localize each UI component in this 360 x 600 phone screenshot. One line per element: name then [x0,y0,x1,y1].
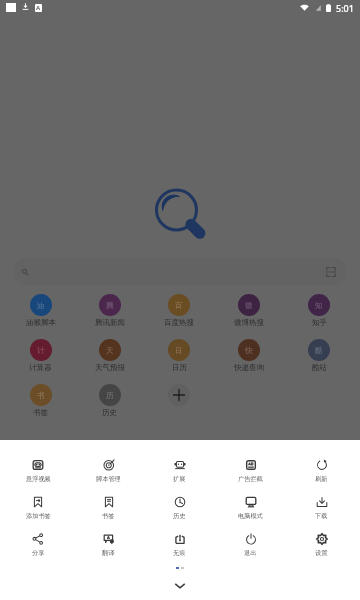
staticText: 知乎 [312,318,327,327]
staticText: 设置 [315,549,328,557]
staticText: 广告拦截 [238,475,263,483]
staticText: 历史 [173,512,186,520]
staticText: 书签 [33,408,48,417]
button[interactable]: 知 [284,293,354,338]
staticText: 日历 [172,363,187,372]
staticText: 刷新 [315,475,328,483]
staticText: 腾 [106,301,114,310]
button[interactable]: 计 [6,338,75,383]
button[interactable]: 脚本管理 [73,458,144,495]
button[interactable]: 酷 [284,338,354,383]
button[interactable]: 百 [144,293,214,338]
staticText: 无痕 [173,549,186,557]
staticText: 计算器 [29,363,52,372]
staticText: 5:01 [336,2,354,14]
button[interactable]: 油 [6,293,75,338]
staticText: 知 [315,301,323,310]
button[interactable]: 悬浮视频 [3,458,73,495]
button[interactable]: 电脑模式 [215,495,286,532]
staticText: 扩展 [173,475,186,483]
button[interactable]: 历 [75,383,144,428]
staticText: 翻译 [102,549,115,557]
staticText: 计 [37,346,45,355]
staticText: 百度热搜 [164,318,194,327]
button[interactable]: 书 [6,383,75,428]
staticText: 电脑模式 [238,512,263,520]
button[interactable]: 日 [144,338,214,383]
button[interactable]: 历史 [144,495,215,532]
staticText: 书 [37,391,45,400]
staticText: 分享 [32,549,45,557]
button[interactable]: 书签 [73,495,144,532]
button[interactable]: 分享 [3,532,73,569]
button[interactable]: 腾 [75,293,144,338]
button[interactable]: 无痕 [144,532,215,569]
button[interactable]: Scan QR code [324,265,337,278]
staticText: 百 [175,301,183,310]
staticText: 历史 [102,408,117,417]
staticText: 微博热搜 [234,318,264,327]
staticText: 退出 [244,549,257,557]
staticText: 油猴脚本 [26,318,56,327]
staticText: 悬浮视频 [26,475,51,483]
staticText: 天 [106,346,114,355]
staticText: 日 [175,346,183,355]
button[interactable]: Add shortcut [144,383,214,428]
staticText: 快 [245,346,253,355]
staticText: 脚本管理 [96,475,121,483]
button[interactable]: 退出 [215,532,286,569]
staticText: 腾讯新闻 [95,318,125,327]
staticText: 书签 [102,512,115,520]
button[interactable]: 刷新 [286,458,357,495]
staticText: 快递查询 [234,363,264,372]
staticText: 天气预报 [95,363,125,372]
staticText: A [36,4,41,12]
button[interactable]: 扩展 [144,458,215,495]
button[interactable]: 设置 [286,532,357,569]
button[interactable]: 天 [75,338,144,383]
button[interactable]: 翻译 [73,532,144,569]
staticText: 下载 [315,512,328,520]
button[interactable]: 广告拦截 [215,458,286,495]
button[interactable]: 下载 [286,495,357,532]
button[interactable]: 微 [214,293,284,338]
staticText: 历 [106,391,114,400]
button[interactable]: 添加书签 [3,495,73,532]
staticText: 添加书签 [26,512,51,520]
staticText: 酷站 [312,363,327,372]
staticText: 油 [37,301,45,310]
button[interactable]: 快 [214,338,284,383]
button[interactable]: Close menu [168,574,192,598]
staticText: 酷 [315,346,323,355]
staticText: 微 [245,301,253,310]
